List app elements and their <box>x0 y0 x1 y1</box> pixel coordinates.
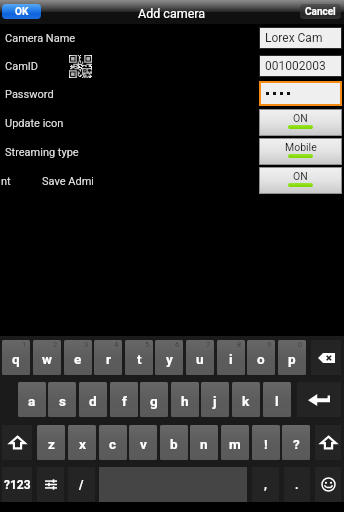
staticText: ON <box>293 170 308 182</box>
button[interactable]: m <box>221 425 249 460</box>
button[interactable]: p <box>278 340 306 375</box>
staticText: Lorex Cam <box>265 31 323 45</box>
button[interactable]: b <box>160 425 188 460</box>
staticText: nt <box>1 175 11 188</box>
button[interactable]: h <box>171 382 199 417</box>
button[interactable]: k <box>232 382 260 417</box>
button[interactable]: j <box>201 382 229 417</box>
staticText: 9 <box>267 340 272 349</box>
button[interactable]: ON <box>260 110 341 135</box>
button[interactable]: Keyboard settings <box>37 467 64 502</box>
staticText: i <box>229 351 233 367</box>
button[interactable]: c <box>99 425 127 460</box>
staticText: ? <box>293 436 300 452</box>
staticText: k <box>242 393 250 409</box>
button[interactable]: Enter <box>297 382 341 417</box>
staticText: q <box>12 351 20 367</box>
button[interactable]: Emoji <box>315 467 341 502</box>
button[interactable]: l <box>263 382 291 417</box>
staticText: n <box>200 436 208 452</box>
staticText: Camera Name <box>5 32 76 45</box>
staticText: y <box>166 351 173 367</box>
staticText: 8 <box>237 340 242 349</box>
staticText: . <box>295 478 299 492</box>
button[interactable]: Backspace <box>311 340 341 375</box>
staticText: o <box>257 351 265 367</box>
staticText: l <box>275 393 279 409</box>
staticText: b <box>170 436 178 452</box>
button[interactable]: r <box>94 340 122 375</box>
staticText: m <box>229 436 241 452</box>
staticText: Save Admi <box>42 175 93 188</box>
button[interactable]: z <box>37 425 65 460</box>
button[interactable]: ?123 <box>2 467 32 502</box>
staticText: 7 <box>206 340 211 349</box>
staticText: p <box>288 351 296 367</box>
button[interactable]: f <box>110 382 138 417</box>
button[interactable]: Lorex Cam <box>260 28 341 48</box>
staticText: j <box>213 393 217 409</box>
staticText: u <box>196 351 204 367</box>
staticText: a <box>28 393 36 409</box>
button[interactable]: Scan QR code <box>69 55 92 78</box>
staticText: 001002003 <box>265 59 326 73</box>
button[interactable]: e <box>64 340 92 375</box>
staticText: c <box>109 436 117 452</box>
staticText: 3 <box>84 340 89 349</box>
button[interactable]: o <box>247 340 275 375</box>
staticText: z <box>48 436 55 452</box>
button[interactable]: 001002003 <box>260 56 341 76</box>
button[interactable]: ON <box>260 168 341 193</box>
staticText: h <box>181 393 189 409</box>
button[interactable]: , <box>252 467 279 502</box>
button[interactable]: Shift <box>315 425 341 460</box>
staticText: 6 <box>175 340 180 349</box>
button[interactable]: n <box>190 425 218 460</box>
staticText: , <box>264 478 267 492</box>
staticText: Password <box>5 88 54 101</box>
button[interactable]: u <box>186 340 214 375</box>
button[interactable]: q <box>2 340 30 375</box>
staticText: 2 <box>53 340 58 349</box>
button[interactable]: / <box>68 467 95 502</box>
staticText: Add camera <box>138 6 206 21</box>
staticText: OK <box>15 6 29 18</box>
button[interactable]: Shift <box>2 425 32 460</box>
staticText: t <box>137 351 142 367</box>
button[interactable]: s <box>48 382 76 417</box>
button[interactable]: Cancel <box>300 4 341 19</box>
button[interactable]: x <box>68 425 96 460</box>
button[interactable] <box>261 83 340 104</box>
staticText: Streaming type <box>5 146 79 159</box>
button[interactable]: OK <box>2 4 41 19</box>
button[interactable]: Mobile <box>260 139 341 164</box>
staticText: Update icon <box>5 117 64 130</box>
button[interactable]: v <box>129 425 157 460</box>
button[interactable]: d <box>79 382 107 417</box>
button[interactable]: ? <box>282 425 310 460</box>
staticText: g <box>150 393 158 409</box>
staticText: f <box>122 393 127 409</box>
staticText: ?123 <box>4 478 31 492</box>
staticText: v <box>140 436 147 452</box>
button[interactable]: t <box>125 340 153 375</box>
button[interactable]: w <box>33 340 61 375</box>
staticText: Mobile <box>285 141 317 153</box>
staticText: 1 <box>22 340 27 349</box>
staticText: s <box>59 393 66 409</box>
staticText: ON <box>293 112 308 124</box>
staticText: 0 <box>298 340 303 349</box>
button[interactable]: ! <box>252 425 280 460</box>
button[interactable]: i <box>217 340 245 375</box>
button[interactable]: . <box>284 467 310 502</box>
staticText: CamID <box>5 60 38 73</box>
staticText: 5 <box>145 340 150 349</box>
staticText: x <box>79 436 86 452</box>
button[interactable]: y <box>155 340 183 375</box>
staticText: / <box>79 478 84 492</box>
button[interactable]: a <box>18 382 46 417</box>
button[interactable]: g <box>140 382 168 417</box>
staticText: w <box>42 351 52 367</box>
staticText: d <box>89 393 97 409</box>
